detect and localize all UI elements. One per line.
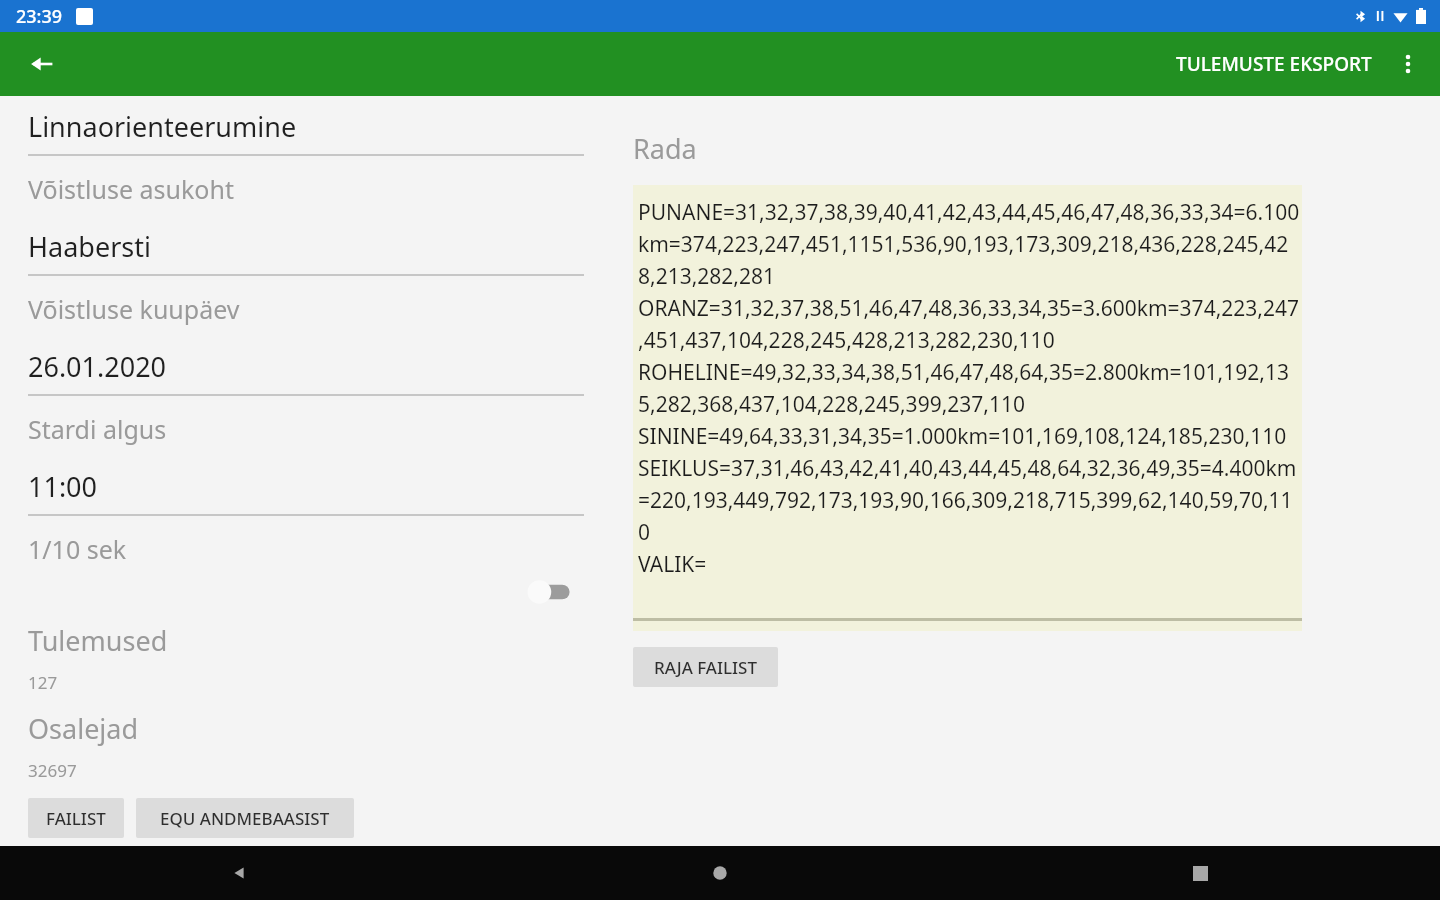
- staticText: 1/10 sek: [28, 532, 127, 566]
- button[interactable]: PUNANE=31,32,37,38,39,40,41,42,43,44,45,…: [633, 185, 1302, 631]
- staticText: Võistluse kuupäev: [28, 292, 240, 326]
- button[interactable]: Recent apps: [960, 846, 1440, 900]
- staticText: 127: [28, 671, 58, 694]
- button[interactable]: EQU ANDMEBAASIST: [136, 798, 354, 838]
- staticText: PUNANE=31,32,37,38,39,40,41,42,43,44,45,…: [638, 198, 1300, 578]
- staticText: Linnaorienteerumine: [28, 108, 297, 145]
- staticText: Osalejad: [28, 710, 139, 747]
- staticText: Rada: [633, 130, 697, 167]
- staticText: Stardi algus: [28, 412, 167, 446]
- button[interactable]: Tenth of second toggle: [518, 571, 584, 613]
- staticText: Tulemused: [28, 622, 168, 659]
- button[interactable]: Back: [18, 40, 66, 88]
- staticText: TULEMUSTE EKSPORT: [1176, 51, 1372, 77]
- button[interactable]: More options: [1382, 38, 1434, 90]
- button[interactable]: Back: [0, 846, 480, 900]
- staticText: 26.01.2020: [28, 348, 167, 385]
- staticText: 11:00: [28, 468, 98, 505]
- button[interactable]: FAILIST: [28, 798, 124, 838]
- button[interactable]: Home: [480, 846, 960, 900]
- staticText: 32697: [28, 759, 77, 782]
- button[interactable]: RAJA FAILIST: [633, 647, 778, 687]
- staticText: Haabersti: [28, 228, 151, 265]
- staticText: EQU ANDMEBAASIST: [160, 807, 330, 830]
- staticText: Võistluse asukoht: [28, 172, 234, 206]
- staticText: FAILIST: [46, 807, 106, 830]
- staticText: RAJA FAILIST: [654, 656, 758, 679]
- staticText: 23:39: [16, 4, 63, 29]
- button[interactable]: TULEMUSTE EKSPORT: [1166, 37, 1382, 91]
